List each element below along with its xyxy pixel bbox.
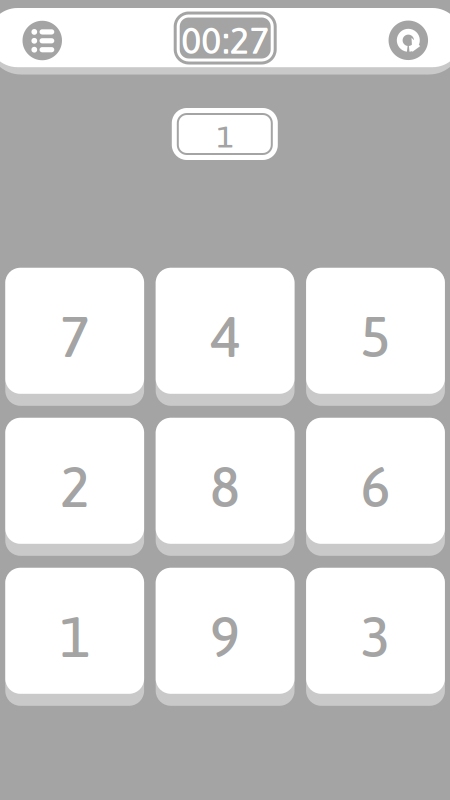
staticText: 4 [210,305,240,369]
staticText: 3 [360,605,390,669]
staticText: 00:27 [181,19,269,62]
staticText: 7 [60,305,90,369]
button[interactable]: 5 [306,268,445,406]
staticText: 5 [360,305,390,369]
button[interactable]: 7 [5,268,144,406]
button[interactable]: Restart [386,18,430,62]
button[interactable]: 4 [156,268,294,406]
staticText: 6 [360,455,390,519]
button[interactable]: 1 [5,568,144,706]
staticText: 9 [210,605,240,669]
staticText: 8 [210,455,240,519]
button[interactable]: 8 [156,418,294,556]
button[interactable]: 9 [156,568,294,706]
button[interactable]: 2 [5,418,144,556]
staticText: 2 [60,455,90,519]
staticText: 1 [217,119,233,154]
button[interactable]: 6 [306,418,445,556]
staticText: 1 [60,605,90,669]
button[interactable]: Levels [20,18,64,62]
button[interactable]: 3 [306,568,445,706]
